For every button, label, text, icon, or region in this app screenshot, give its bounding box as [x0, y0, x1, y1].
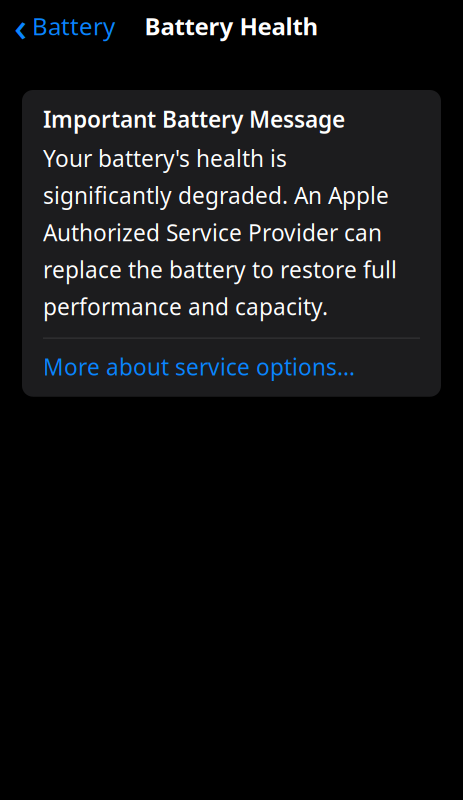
- staticText: Important Battery Message: [43, 104, 345, 134]
- staticText: More about service options...: [43, 352, 355, 382]
- button[interactable]: ‹: [0, 0, 125, 56]
- button[interactable]: More about service options...: [43, 339, 420, 397]
- staticText: Your battery's health is significantly d…: [43, 143, 397, 322]
- staticText: Battery: [32, 10, 115, 42]
- staticText: Battery Health: [144, 10, 318, 42]
- staticText: ‹: [14, 0, 27, 52]
